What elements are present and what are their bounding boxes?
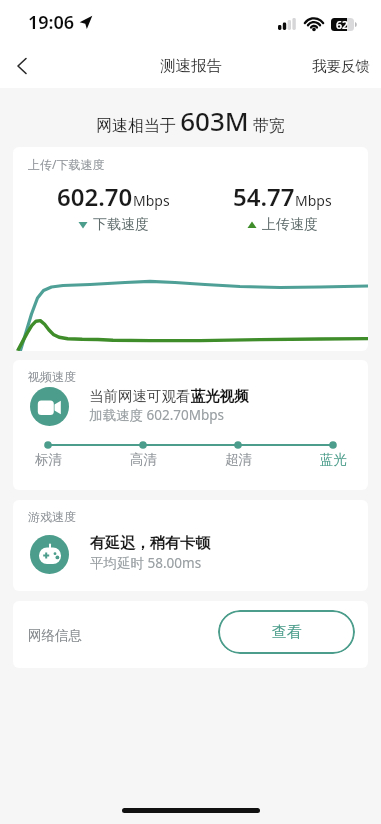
staticText: 网络信息 [28, 627, 82, 644]
staticText: 加载速度 602.70Mbps [89, 406, 225, 424]
staticText: 平均延时 58.00ms [90, 554, 202, 572]
staticText: 蓝光 [320, 451, 347, 468]
staticText: Mbps [133, 191, 170, 210]
staticText: 上传/下载速度 [28, 156, 105, 172]
button[interactable] [6, 51, 36, 81]
staticText: 超清 [225, 451, 252, 468]
staticText: 游戏速度 [28, 509, 76, 524]
staticText: 视频速度 [28, 369, 76, 384]
staticText: 测速报告 [160, 56, 222, 76]
staticText: 我要反馈 [312, 57, 370, 75]
staticText: 网速相当于 603M 带宽 [96, 103, 285, 138]
staticText: 62 [336, 18, 349, 31]
staticText: 54.77 [233, 180, 295, 213]
staticText: 602.70 [57, 180, 133, 213]
staticText: 有延迟，稍有卡顿 [90, 534, 210, 553]
button[interactable]: 查看 [218, 610, 355, 654]
staticText: Mbps [295, 191, 332, 210]
staticText: 19:06 [28, 10, 75, 35]
staticText: 上传速度 [262, 216, 318, 234]
staticText: 下载速度 [93, 216, 149, 234]
staticText: 当前网速可观看蓝光视频 [89, 387, 249, 405]
staticText: 查看 [272, 623, 302, 642]
staticText: 标清 [35, 451, 62, 468]
staticText: 高清 [130, 451, 157, 468]
button[interactable]: 我要反馈 [301, 49, 381, 83]
